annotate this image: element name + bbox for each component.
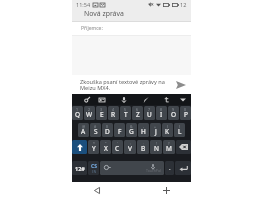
- staticText: 6: [136, 107, 139, 112]
- staticText: ': [117, 141, 118, 146]
- button[interactable]: 4: [108, 106, 119, 120]
- staticText: 2: [88, 107, 91, 112]
- staticText: H: [141, 127, 146, 136]
- button[interactable]: Voice input: [117, 94, 131, 105]
- button[interactable]: 6: [132, 106, 143, 120]
- staticText: 11:54: [76, 1, 91, 8]
- button[interactable]: ': [112, 140, 123, 154]
- button[interactable]: ": [100, 140, 111, 154]
- staticText: B: [141, 144, 146, 153]
- button[interactable]: -: [138, 123, 149, 137]
- button[interactable]: Gesture typing: [80, 94, 94, 105]
- button[interactable]: CS: [88, 161, 99, 175]
- button[interactable]: Backspace: [176, 140, 191, 154]
- button[interactable]: Shift: [72, 140, 87, 154]
- button[interactable]: Handwriting: [139, 94, 153, 105]
- staticText: Z: [136, 110, 140, 119]
- staticText: .: [169, 164, 171, 172]
- staticText: E: [100, 110, 104, 119]
- staticText: I: [160, 110, 163, 119]
- staticText: (: [167, 124, 169, 129]
- button[interactable]: Stickers: [95, 94, 109, 105]
- staticText: V: [128, 144, 132, 153]
- staticText: TouchPal: [146, 168, 161, 173]
- button[interactable]: 9: [168, 106, 179, 120]
- staticText: CS: [91, 163, 97, 170]
- button[interactable]: Hide keyboard: [175, 94, 191, 105]
- button[interactable]: &: [126, 123, 137, 137]
- button[interactable]: ;: [137, 140, 149, 154]
- staticText: 8: [160, 107, 163, 112]
- staticText: O: [171, 110, 177, 119]
- button[interactable]: Send: [171, 75, 191, 94]
- staticText: Nová zpráva: [84, 9, 124, 18]
- button[interactable]: Home: [156, 182, 176, 198]
- button[interactable]: Příjemce:: [72, 22, 191, 35]
- staticText: T: [124, 110, 128, 119]
- staticText: @: [82, 124, 86, 129]
- staticText: 12#: [75, 165, 85, 172]
- staticText: 1: [76, 107, 79, 112]
- staticText: ": [105, 141, 107, 146]
- button[interactable]: 5: [120, 106, 131, 120]
- button[interactable]: :: [124, 140, 136, 154]
- staticText: 9: [172, 107, 175, 112]
- staticText: *: [93, 141, 95, 146]
- staticText: Y: [92, 144, 96, 153]
- button[interactable]: @: [78, 123, 89, 137]
- button[interactable]: _: [114, 123, 125, 137]
- staticText: A: [81, 127, 86, 136]
- button[interactable]: #: [90, 123, 101, 137]
- staticText: ): [179, 124, 181, 129]
- staticText: 0: [184, 107, 187, 112]
- button[interactable]: 0: [180, 106, 191, 120]
- staticText: M: [166, 144, 172, 153]
- staticText: $: [106, 124, 109, 129]
- staticText: !: [156, 141, 157, 146]
- button[interactable]: Translate: [160, 94, 174, 105]
- button[interactable]: 2: [84, 106, 95, 120]
- staticText: Příjemce:: [81, 25, 103, 32]
- staticText: &: [130, 124, 133, 129]
- staticText: 4: [112, 107, 115, 112]
- staticText: F: [118, 127, 122, 136]
- button[interactable]: *: [88, 140, 99, 154]
- staticText: W: [86, 110, 93, 119]
- staticText: 5: [124, 107, 127, 112]
- button[interactable]: 8: [156, 106, 167, 120]
- staticText: :: [130, 141, 131, 146]
- staticText: 12: [180, 1, 187, 8]
- staticText: 3: [100, 107, 103, 112]
- staticText: #: [94, 124, 97, 129]
- staticText: ;: [143, 141, 144, 146]
- staticText: R: [111, 110, 116, 119]
- staticText: 7: [148, 107, 151, 112]
- staticText: +: [154, 124, 157, 129]
- button[interactable]: ?: [163, 140, 175, 154]
- staticText: X: [104, 144, 108, 153]
- button[interactable]: !: [150, 140, 162, 154]
- button[interactable]: 3: [96, 106, 107, 120]
- button[interactable]: Enter: [175, 161, 191, 175]
- staticText: L: [178, 127, 182, 136]
- staticText: C: [115, 144, 120, 153]
- button[interactable]: Space: [100, 161, 164, 175]
- staticText: -: [143, 124, 145, 129]
- button[interactable]: $: [102, 123, 113, 137]
- staticText: J: [155, 127, 157, 136]
- staticText: Q: [75, 110, 81, 119]
- button[interactable]: ): [174, 123, 185, 137]
- button[interactable]: 12#: [72, 161, 87, 175]
- button[interactable]: (: [162, 123, 173, 137]
- button[interactable]: .: [165, 161, 174, 175]
- staticText: Zkouška psaní textové zprávy na Meizu MX…: [80, 78, 165, 92]
- button[interactable]: 1: [72, 106, 83, 120]
- staticText: _: [119, 124, 121, 129]
- staticText: N: [154, 144, 159, 153]
- button[interactable]: Back: [87, 182, 107, 198]
- button[interactable]: +: [150, 123, 161, 137]
- staticText: S: [94, 127, 98, 136]
- staticText: G: [129, 127, 134, 136]
- button[interactable]: 7: [144, 106, 155, 120]
- staticText: P: [184, 110, 188, 119]
